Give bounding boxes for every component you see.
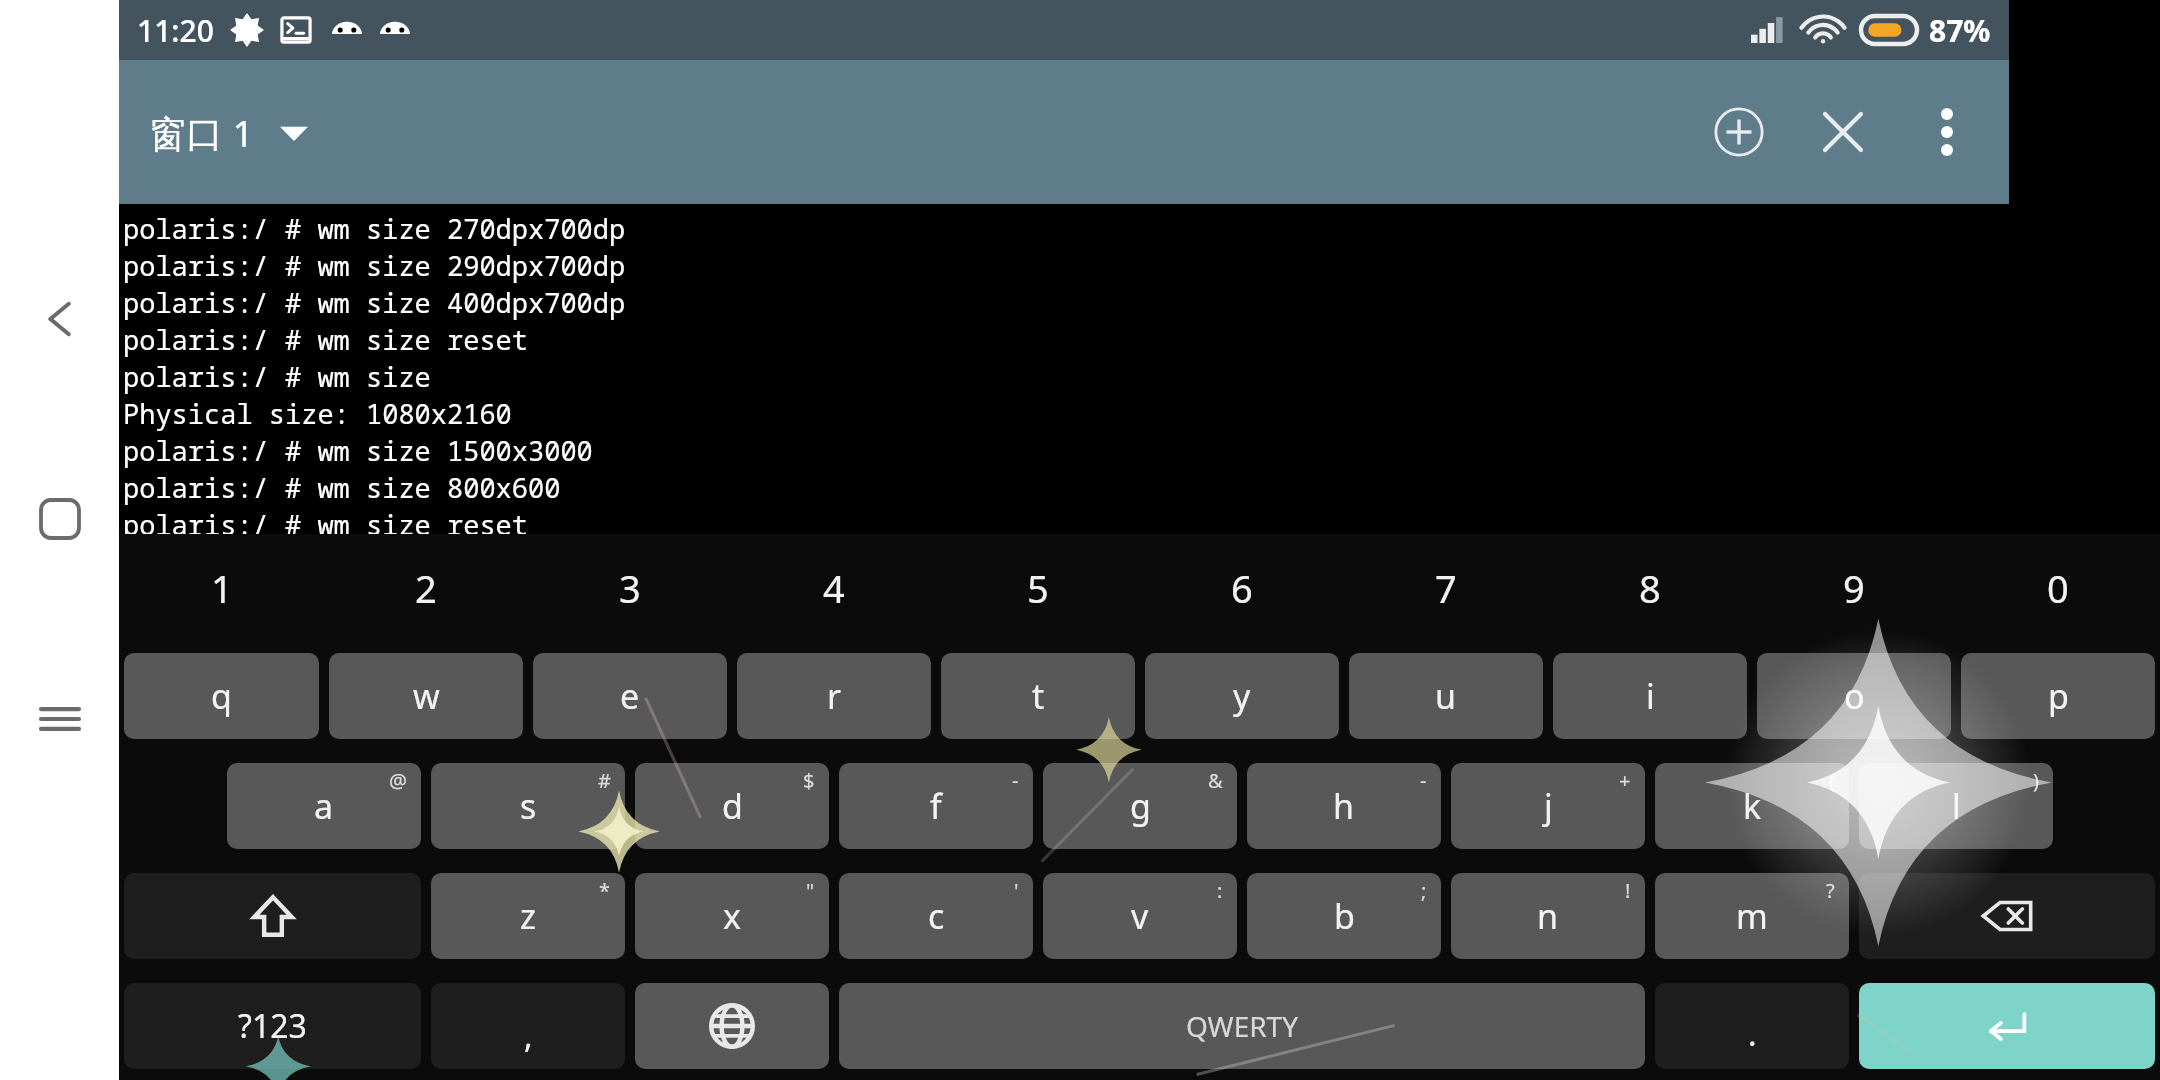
button[interactable]: t — [941, 653, 1135, 739]
staticText: q — [211, 673, 232, 719]
staticText: i — [1646, 673, 1655, 719]
staticText: polaris:/ # wm size 800x600 — [123, 469, 561, 506]
staticText: ( — [1829, 767, 1835, 794]
button[interactable]: c — [839, 873, 1033, 959]
staticText: ? — [1826, 877, 1835, 904]
button[interactable]: Back — [16, 275, 104, 363]
button[interactable]: Recents — [16, 475, 104, 563]
button[interactable]: Backspace — [1859, 873, 2155, 959]
staticText: w — [413, 673, 440, 719]
button[interactable]: i — [1553, 653, 1747, 739]
staticText: & — [1208, 767, 1223, 794]
button[interactable]: Enter — [1859, 983, 2155, 1069]
button[interactable]: u — [1349, 653, 1543, 739]
button[interactable]: b — [1247, 873, 1441, 959]
staticText: 2 — [415, 562, 437, 614]
staticText: b — [1334, 893, 1355, 939]
staticText: @ — [389, 767, 407, 794]
staticText: ; — [1421, 877, 1427, 904]
button[interactable]: g — [1043, 763, 1237, 849]
staticText: n — [1537, 893, 1559, 939]
staticText: 5 — [1027, 562, 1049, 614]
button[interactable]: n — [1451, 873, 1645, 959]
button[interactable]: 9 — [1752, 534, 1956, 641]
button[interactable]: 1 — [119, 534, 324, 641]
staticText: , — [524, 1014, 533, 1058]
button[interactable]: a — [227, 763, 421, 849]
button[interactable]: k — [1655, 763, 1849, 849]
button[interactable]: . — [1655, 983, 1849, 1069]
staticText: * — [599, 877, 611, 904]
button[interactable]: 7 — [1344, 534, 1548, 641]
staticText: 8 — [1639, 562, 1661, 614]
staticText: ) — [2033, 767, 2039, 794]
staticText: 0 — [2047, 562, 2069, 614]
button[interactable]: Menu — [16, 675, 104, 763]
button[interactable]: e — [533, 653, 727, 739]
button[interactable]: 窗口 1 — [149, 107, 308, 158]
button[interactable]: y — [1145, 653, 1339, 739]
button[interactable]: l — [1859, 763, 2053, 849]
staticText: 3 — [619, 562, 641, 614]
staticText: r — [827, 673, 842, 719]
button[interactable]: 4 — [732, 534, 936, 641]
staticText: 9 — [1843, 562, 1865, 614]
staticText: polaris:/ # wm size 1500x3000 — [123, 432, 593, 469]
staticText: polaris:/ # wm size reset — [123, 506, 528, 534]
button[interactable]: ?123 — [124, 983, 421, 1069]
button[interactable]: x — [635, 873, 829, 959]
staticText: polaris:/ # wm size — [123, 358, 431, 395]
button[interactable]: Close — [1791, 80, 1895, 184]
staticText: - — [1012, 767, 1019, 794]
staticText: polaris:/ # wm size 400dpx700dp — [123, 284, 626, 321]
staticText: ?123 — [238, 1004, 307, 1048]
staticText: 6 — [1231, 562, 1253, 614]
button[interactable]: z — [431, 873, 625, 959]
button[interactable]: q — [124, 653, 319, 739]
button[interactable]: New window — [1687, 80, 1791, 184]
staticText: polaris:/ # wm size reset — [123, 321, 528, 358]
staticText: c — [928, 893, 945, 939]
button[interactable]: j — [1451, 763, 1645, 849]
button[interactable]: p — [1961, 653, 2155, 739]
staticText: p — [2048, 673, 2069, 719]
staticText: QWERTY — [1186, 1007, 1299, 1045]
staticText: 87% — [1929, 10, 1991, 51]
button[interactable]: QWERTY — [839, 983, 1645, 1069]
button[interactable]: 3 — [528, 534, 732, 641]
button[interactable]: 5 — [936, 534, 1140, 641]
button[interactable]: 0 — [1956, 534, 2160, 641]
staticText: d — [722, 783, 743, 829]
staticText: x — [723, 893, 741, 939]
button[interactable]: s — [431, 763, 625, 849]
button[interactable]: r — [737, 653, 931, 739]
button[interactable]: 2 — [324, 534, 528, 641]
button[interactable]: , — [431, 983, 625, 1069]
staticText: Physical size: 1080x2160 — [123, 395, 512, 432]
button[interactable]: 8 — [1548, 534, 1752, 641]
staticText: o — [1844, 673, 1865, 719]
staticText: + — [1619, 767, 1631, 794]
staticText: u — [1435, 673, 1457, 719]
staticText: y — [1233, 673, 1251, 719]
button[interactable]: 6 — [1140, 534, 1344, 641]
staticText: e — [620, 673, 640, 719]
button[interactable]: w — [329, 653, 523, 739]
button[interactable]: f — [839, 763, 1033, 849]
staticText: ! — [1625, 877, 1631, 904]
staticText: : — [1217, 877, 1223, 904]
staticText: f — [930, 783, 942, 829]
button[interactable]: More options — [1895, 80, 1999, 184]
button[interactable]: m — [1655, 873, 1849, 959]
button[interactable]: o — [1757, 653, 1951, 739]
button[interactable]: v — [1043, 873, 1237, 959]
staticText: a — [314, 783, 334, 829]
button[interactable]: Change keyboard — [635, 983, 829, 1069]
staticText: 窗口 1 — [149, 107, 254, 158]
button[interactable]: Shift — [124, 873, 421, 959]
staticText: s — [520, 783, 537, 829]
button[interactable]: h — [1247, 763, 1441, 849]
staticText: z — [520, 893, 536, 939]
staticText: polaris:/ # wm size 290dpx700dp — [123, 247, 626, 284]
button[interactable]: d — [635, 763, 829, 849]
